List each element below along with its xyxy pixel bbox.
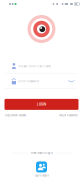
button[interactable]: Log in locally: [34, 161, 48, 177]
button[interactable]: Forgot Password: [59, 114, 78, 117]
button[interactable]: Registered account: [5, 114, 26, 117]
staticText: Forgot Password: [59, 114, 78, 117]
staticText: Log in locally: [34, 174, 48, 177]
button[interactable]: LOGIN: [4, 99, 78, 110]
staticText: Please enter user name: [18, 65, 51, 68]
staticText: Enter Password: [18, 80, 39, 83]
staticText: LOGIN: [37, 103, 46, 106]
staticText: Registered account: [5, 114, 26, 117]
staticText: Other ways to log in: [30, 152, 52, 154]
